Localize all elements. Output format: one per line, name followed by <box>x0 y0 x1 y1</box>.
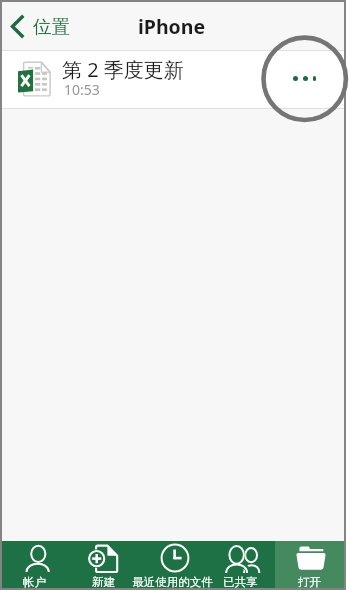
staticText: 已共享 <box>223 575 258 589</box>
staticText: 10:53 <box>64 80 100 99</box>
button[interactable]: 位置 <box>2 9 78 44</box>
staticText: 打开 <box>298 575 321 589</box>
button[interactable]: 打开 <box>277 541 346 588</box>
staticText: iPhone <box>138 13 206 40</box>
staticText: 帐户 <box>23 575 46 589</box>
button[interactable]: 已共享 <box>208 541 277 588</box>
button[interactable]: 第 2 季度更新 <box>2 51 344 108</box>
staticText: 新建 <box>92 575 115 589</box>
staticText: 第 2 季度更新 <box>62 56 184 83</box>
staticText: 最近使用的文件 <box>132 575 213 589</box>
button[interactable]: 新建 <box>71 541 140 588</box>
staticText: 位置 <box>33 15 70 38</box>
button[interactable]: 帐户 <box>2 541 71 588</box>
button[interactable]: 最近使用的文件 <box>140 541 209 588</box>
button[interactable]: More options <box>293 73 316 84</box>
